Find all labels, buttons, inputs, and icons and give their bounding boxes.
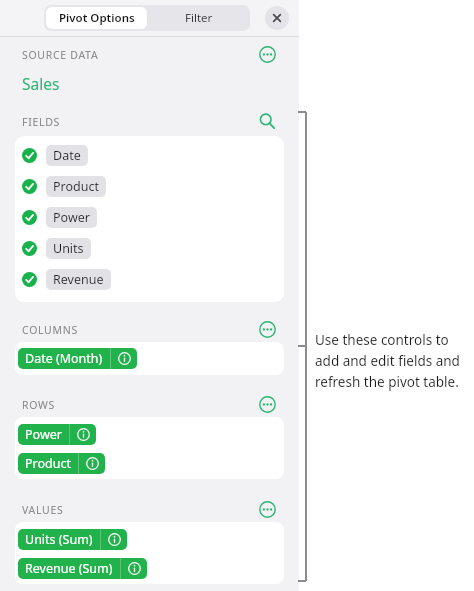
staticText: Sales <box>22 73 60 94</box>
staticText: Date <box>53 147 81 164</box>
staticText: add and edit fields and <box>315 352 460 370</box>
button[interactable]: Product <box>22 176 106 197</box>
staticText: Revenue (Sum) <box>25 560 113 577</box>
staticText: Product <box>25 455 71 472</box>
button[interactable]: Units (Sum) <box>18 529 127 550</box>
button[interactable]: Revenue <box>22 269 111 290</box>
staticText: Use these controls to <box>315 331 449 349</box>
staticText: Filter <box>185 10 213 26</box>
staticText: Pivot Options <box>59 10 135 26</box>
staticText: FIELDS <box>22 115 60 129</box>
button[interactable]: Close <box>265 6 289 30</box>
button[interactable]: More options <box>256 393 278 415</box>
button[interactable]: Power <box>18 424 96 445</box>
button[interactable]: Units <box>22 238 91 259</box>
staticText: Revenue <box>53 271 104 288</box>
button[interactable]: More options <box>256 43 278 65</box>
staticText: Units (Sum) <box>25 531 93 548</box>
button[interactable]: More options <box>256 498 278 520</box>
button[interactable]: Date (Month) <box>18 348 137 369</box>
button[interactable]: Revenue (Sum) <box>18 558 147 579</box>
button[interactable]: Date <box>22 145 88 166</box>
staticText: SOURCE DATA <box>22 48 99 62</box>
button[interactable]: Pivot Options <box>46 7 147 29</box>
button[interactable]: Power <box>22 207 97 228</box>
staticText: Power <box>53 209 90 226</box>
button[interactable]: Product <box>18 453 105 474</box>
staticText: Units <box>53 240 84 257</box>
button[interactable]: More options <box>256 318 278 340</box>
staticText: refresh the pivot table. <box>315 373 459 391</box>
button[interactable]: Filter <box>149 7 248 29</box>
staticText: Product <box>53 178 99 195</box>
staticText: Power <box>25 426 62 443</box>
staticText: Date (Month) <box>25 350 103 367</box>
staticText: VALUES <box>22 503 64 517</box>
button[interactable]: Search fields <box>256 110 278 132</box>
staticText: COLUMNS <box>22 323 78 337</box>
staticText: ROWS <box>22 398 55 412</box>
